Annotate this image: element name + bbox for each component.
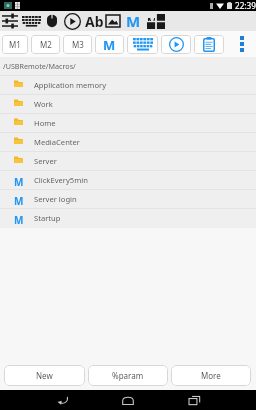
staticText: Ab	[85, 12, 104, 31]
staticText: New	[36, 370, 53, 381]
button[interactable]: M	[0, 171, 256, 189]
staticText: M	[103, 36, 116, 54]
button[interactable]: Mouse	[44, 11, 59, 31]
staticText: Server login	[34, 194, 77, 204]
staticText: /USBRemote/Macros/	[3, 61, 76, 71]
button[interactable]: Work	[0, 95, 256, 113]
staticText: Server	[34, 156, 57, 166]
staticText: %param	[112, 370, 144, 381]
staticText: Startup	[34, 213, 61, 223]
staticText: Work	[34, 99, 53, 109]
button[interactable]: M	[0, 209, 256, 227]
button[interactable]: M3	[63, 35, 92, 54]
button[interactable]: Application memory	[0, 76, 256, 94]
button[interactable]: More	[171, 365, 251, 386]
button[interactable]: Server	[0, 152, 256, 170]
button[interactable]: New	[4, 365, 85, 386]
button[interactable]: Recent apps	[174, 390, 214, 410]
staticText: ClickEvery5min	[34, 175, 88, 185]
staticText: M	[14, 213, 23, 224]
staticText: M	[14, 194, 23, 205]
staticText: M1	[9, 39, 21, 50]
button[interactable]: %param	[88, 365, 168, 386]
button[interactable]: MediaCenter	[0, 133, 256, 151]
button[interactable]: Macro list	[95, 35, 124, 54]
staticText: M	[126, 11, 141, 31]
staticText: Home	[34, 118, 56, 128]
button[interactable]: Clipboard	[194, 35, 224, 54]
button[interactable]: Keyboard	[127, 35, 158, 54]
button[interactable]: Settings	[1, 11, 18, 31]
staticText: M	[147, 14, 155, 21]
button[interactable]: Macro grid	[146, 11, 165, 31]
button[interactable]: M	[0, 190, 256, 208]
button[interactable]: Play macro	[63, 11, 81, 31]
staticText: 22:39	[235, 0, 256, 11]
button[interactable]: Back	[42, 390, 82, 410]
staticText: M	[14, 175, 23, 186]
button[interactable]: M2	[31, 35, 60, 54]
staticText: M3	[72, 39, 84, 50]
staticText: Application memory	[34, 80, 107, 90]
button[interactable]: M1	[2, 35, 28, 54]
button[interactable]: Play	[161, 35, 191, 54]
button[interactable]: Home	[0, 114, 256, 132]
button[interactable]: Keyboard	[21, 11, 41, 31]
button[interactable]: Text	[84, 11, 104, 31]
staticText: M2	[40, 39, 52, 50]
button[interactable]: Image	[105, 11, 120, 31]
staticText: MediaCenter	[34, 137, 80, 147]
staticText: More	[201, 370, 221, 381]
button[interactable]: Macro	[126, 11, 141, 31]
button[interactable]: Home	[108, 390, 148, 410]
button[interactable]: More options	[227, 31, 256, 57]
